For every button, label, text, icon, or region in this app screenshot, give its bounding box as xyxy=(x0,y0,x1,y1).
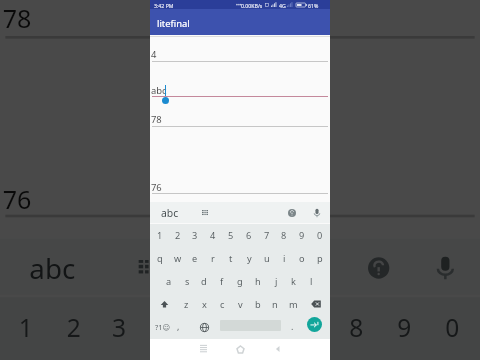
button[interactable]: Home xyxy=(227,339,253,359)
button[interactable]: 0 xyxy=(311,226,329,244)
button[interactable]: 9 xyxy=(381,303,429,351)
button[interactable]: 1 xyxy=(151,226,169,244)
button[interactable]: 3 xyxy=(96,303,144,351)
button[interactable]: r xyxy=(204,249,222,267)
button[interactable]: l xyxy=(302,272,320,290)
button[interactable]: 5 xyxy=(222,226,240,244)
button[interactable]: 7 xyxy=(258,226,276,244)
button[interactable]: . xyxy=(285,315,299,337)
staticText: 7 xyxy=(264,229,270,242)
button[interactable]: m xyxy=(284,295,302,313)
staticText: 0 xyxy=(317,229,323,242)
staticText: abc xyxy=(29,249,77,287)
staticText: 6 xyxy=(256,311,272,345)
button[interactable]: n xyxy=(266,295,284,313)
button[interactable]: j xyxy=(267,272,285,290)
button[interactable]: 2 xyxy=(169,226,187,244)
button[interactable]: 2 xyxy=(51,303,99,351)
button[interactable]: 76 xyxy=(3,180,472,217)
button[interactable]: Change language xyxy=(195,316,213,338)
button[interactable]: Back xyxy=(265,339,291,359)
button[interactable]: Backspace xyxy=(302,293,330,315)
button[interactable]: abc xyxy=(156,204,184,222)
staticText: q xyxy=(157,252,163,265)
staticText: f xyxy=(220,275,224,288)
button[interactable]: e xyxy=(186,249,204,267)
button[interactable]: b xyxy=(249,295,267,313)
button[interactable]: v xyxy=(231,295,249,313)
button[interactable]: Keyboard modes xyxy=(117,244,176,292)
button[interactable]: Help xyxy=(283,204,301,222)
button[interactable]: Recents xyxy=(190,338,216,358)
button[interactable]: t xyxy=(222,249,240,267)
button[interactable]: Enter xyxy=(307,317,322,332)
button[interactable]: abc xyxy=(151,83,327,97)
button[interactable]: 8 xyxy=(333,303,381,351)
button[interactable]: c xyxy=(213,295,231,313)
staticText: n xyxy=(272,298,278,311)
button[interactable]: 76 xyxy=(151,180,327,194)
button[interactable]: Voice input xyxy=(308,204,326,222)
button[interactable]: 78 xyxy=(151,112,327,126)
button[interactable]: o xyxy=(293,249,311,267)
staticText: v xyxy=(238,298,243,311)
button[interactable]: litefinal xyxy=(152,16,194,30)
staticText: 4 xyxy=(210,229,216,242)
button[interactable]: s xyxy=(178,272,196,290)
button[interactable]: 5 xyxy=(192,303,240,351)
button[interactable]: Shift xyxy=(151,293,178,315)
button[interactable]: y xyxy=(240,249,258,267)
button[interactable]: x xyxy=(195,295,213,313)
button[interactable]: 6 xyxy=(240,226,258,244)
button[interactable]: 0 xyxy=(429,303,477,351)
button[interactable]: , xyxy=(171,315,185,337)
button[interactable]: p xyxy=(311,249,329,267)
button[interactable]: ?1☺ xyxy=(150,316,175,338)
button[interactable]: 4 xyxy=(204,226,222,244)
staticText: abc xyxy=(151,84,167,97)
staticText: l xyxy=(310,275,313,288)
staticText: 8 xyxy=(349,311,365,345)
button[interactable]: Keyboard modes xyxy=(194,204,216,222)
button[interactable]: 6 xyxy=(240,303,288,351)
button[interactable]: 4 xyxy=(151,47,327,61)
staticText: o xyxy=(299,252,305,265)
button[interactable]: 3 xyxy=(186,226,204,244)
button[interactable]: Voice input xyxy=(421,244,469,292)
staticText: 6 xyxy=(246,229,252,242)
staticText: j xyxy=(275,275,278,288)
button[interactable]: h xyxy=(249,272,267,290)
button[interactable]: d xyxy=(195,272,213,290)
button[interactable]: Help xyxy=(355,244,403,292)
button[interactable]: f xyxy=(213,272,231,290)
button[interactable]: w xyxy=(169,249,187,267)
button[interactable]: k xyxy=(284,272,302,290)
button[interactable]: u xyxy=(258,249,276,267)
button[interactable]: 78 xyxy=(3,0,472,36)
button[interactable]: 7 xyxy=(288,303,336,351)
staticText: 9 xyxy=(299,229,305,242)
button[interactable]: 1 xyxy=(3,303,51,351)
staticText: litefinal xyxy=(157,17,190,30)
button[interactable]: i xyxy=(275,249,293,267)
staticText: x xyxy=(202,298,207,311)
button[interactable]: 9 xyxy=(293,226,311,244)
button[interactable]: 8 xyxy=(275,226,293,244)
button[interactable]: q xyxy=(151,249,169,267)
staticText: 1 xyxy=(19,311,35,345)
staticText: t xyxy=(229,252,233,265)
staticText: p xyxy=(317,252,323,265)
staticText: s xyxy=(185,275,190,288)
staticText: z xyxy=(184,298,189,311)
staticText: 0.00KB/s xyxy=(241,2,263,9)
button[interactable]: 4 xyxy=(144,303,192,351)
staticText: 4 xyxy=(151,48,157,61)
button[interactable]: abc xyxy=(16,244,91,292)
button[interactable]: g xyxy=(231,272,249,290)
staticText: 0 xyxy=(445,311,461,345)
button[interactable]: z xyxy=(177,295,195,313)
staticText: 1 xyxy=(157,229,163,242)
button[interactable]: a xyxy=(160,272,178,290)
staticText: c xyxy=(220,298,225,311)
